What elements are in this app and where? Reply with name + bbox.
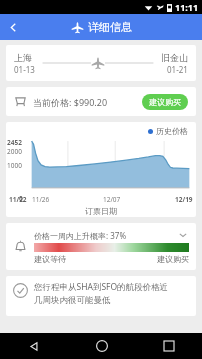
staticText: 11/22 xyxy=(9,195,27,204)
button[interactable]: 历史价格 xyxy=(6,122,196,217)
staticText: 2000 xyxy=(7,147,22,156)
staticText: 几周块内很可能曼低 xyxy=(34,295,111,306)
staticText: 旧金山 xyxy=(161,52,188,63)
staticText: 详细信息 xyxy=(88,20,132,34)
staticText: 上海 xyxy=(14,52,32,63)
staticText: 0 xyxy=(19,194,23,203)
button[interactable]: 您行程申从SHA到SFO的航段价格近 xyxy=(6,276,196,316)
staticText: 建议购买 xyxy=(157,254,189,264)
button[interactable]: 建议购买 xyxy=(142,94,188,110)
staticText: 您行程申从SHA到SFO的航段价格近 xyxy=(34,281,169,293)
staticText: 12/07 xyxy=(103,195,121,204)
staticText: 12/19 xyxy=(175,195,193,204)
button[interactable]: Back xyxy=(0,333,68,359)
staticText: 建议等待 xyxy=(34,254,66,264)
staticText: 建议购买 xyxy=(149,97,181,107)
button[interactable]: Home xyxy=(68,333,135,359)
staticText: 1000 xyxy=(7,161,22,170)
button[interactable]: 上海 xyxy=(6,45,196,81)
button[interactable]: Back xyxy=(0,14,26,40)
button[interactable]: Expand xyxy=(177,229,189,241)
staticText: 历史价格 xyxy=(156,126,188,136)
button[interactable]: 价格一周内上升概率: 37% xyxy=(6,223,196,270)
staticText: 价格一周内上升概率: 37% xyxy=(34,230,127,241)
staticText: 11:11 xyxy=(175,1,199,13)
button[interactable]: Recent apps xyxy=(135,333,202,359)
staticText: 01-21 xyxy=(167,64,188,75)
staticText: 01-13 xyxy=(14,64,35,75)
staticText: 订票日期 xyxy=(85,206,117,216)
staticText: 2452 xyxy=(7,138,22,147)
staticText: 11/26 xyxy=(32,195,50,204)
button[interactable]: 当前价格: $990.20 xyxy=(6,87,196,116)
staticText: 当前价格: $990.20 xyxy=(33,96,108,108)
